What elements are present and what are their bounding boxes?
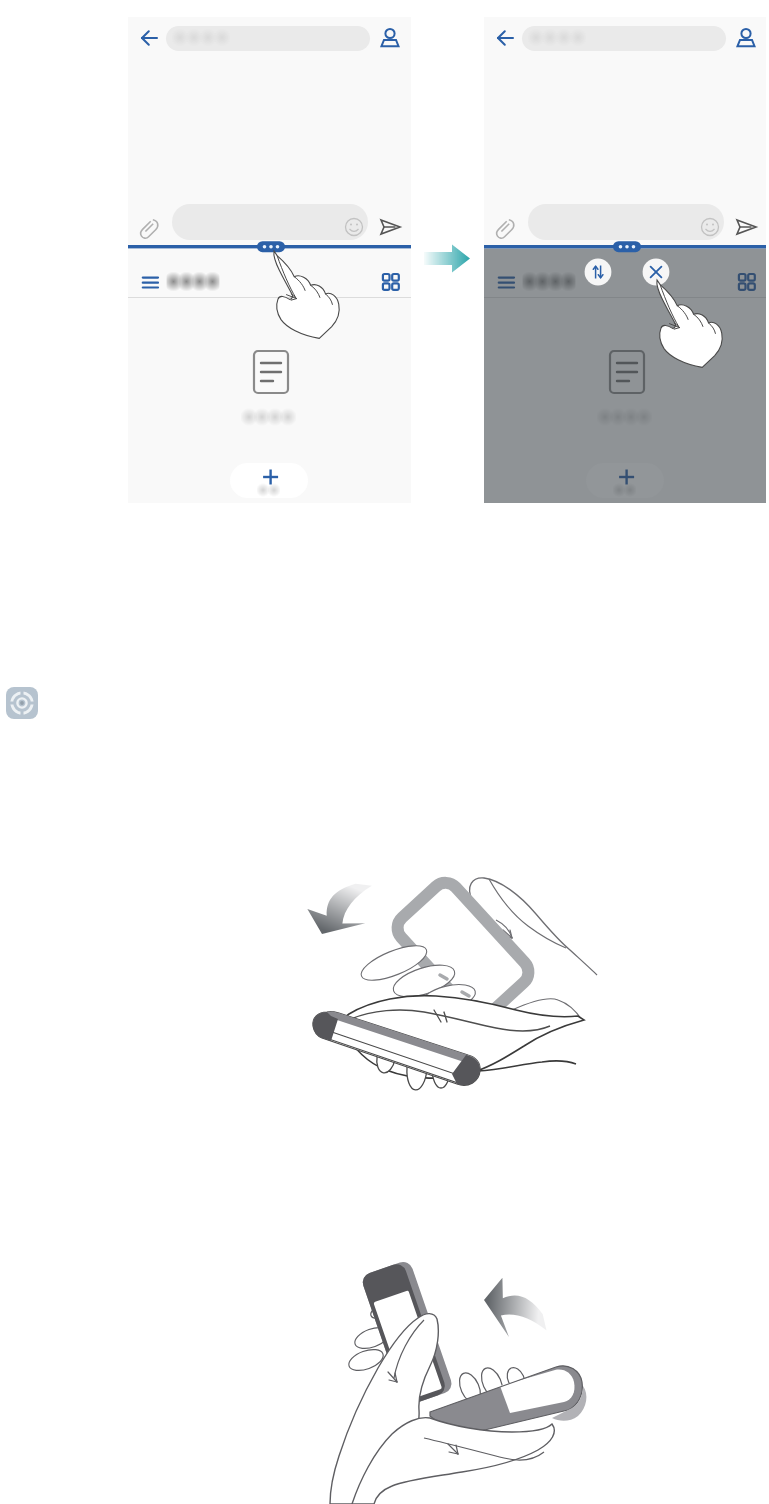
button[interactable]: Close split screen: [642, 258, 670, 286]
button[interactable]: Emoji: [340, 214, 368, 242]
button[interactable]: Conversation title: [166, 26, 370, 51]
button[interactable]: Conversation title: [522, 26, 726, 51]
button[interactable]: Message input: [528, 204, 724, 240]
button[interactable]: Menu: [140, 272, 174, 300]
button[interactable]: Notes title: [166, 272, 226, 294]
button[interactable]: New note: [230, 463, 310, 499]
button[interactable]: Back: [496, 24, 530, 52]
button[interactable]: Send: [376, 212, 404, 240]
button[interactable]: Split screen handle: [610, 241, 644, 255]
button[interactable]: Back: [140, 24, 174, 52]
button[interactable]: Contact profile: [378, 24, 406, 52]
button[interactable]: Tip: [6, 687, 38, 719]
button[interactable]: Emoji: [696, 214, 724, 242]
button[interactable]: Attach file: [500, 206, 528, 234]
button[interactable]: Attach file: [144, 206, 172, 234]
button[interactable]: Contact profile: [734, 24, 762, 52]
button[interactable]: Send: [732, 212, 760, 240]
button[interactable]: Switch layout: [732, 272, 760, 300]
button[interactable]: Message input: [172, 204, 368, 240]
button[interactable]: Split screen handle: [254, 241, 288, 255]
button[interactable]: Menu: [496, 272, 530, 300]
button[interactable]: Swap split screen apps: [584, 259, 612, 287]
button[interactable]: Switch layout: [380, 272, 408, 300]
button[interactable]: New note: [586, 463, 666, 499]
